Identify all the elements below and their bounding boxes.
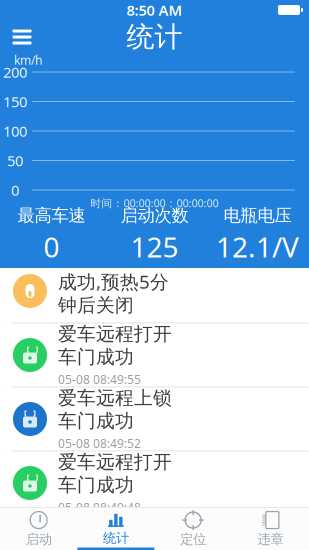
staticText: 爱车远程打开车门成功 [58,323,172,368]
staticText: km/h [14,52,42,68]
staticText: 统计 [103,530,129,546]
staticText: 05-08 08:49:55 [58,371,141,387]
staticText: 违章 [257,531,283,547]
button[interactable]: 爱车远程打开车门成功 [0,451,309,515]
button[interactable]: 统计 [77,507,154,550]
staticText: 最高车速 [17,205,85,226]
staticText: 150 [3,92,27,111]
staticText: 爱车远程上锁车门成功 [58,387,172,432]
button[interactable]: 违章 [232,507,309,550]
staticText: 0 [11,180,19,200]
staticText: 爱车远程启动成功,预热5分钟后关闭 [58,246,172,317]
staticText: 05-08 08:49:59 [58,320,141,336]
button[interactable]: Menu [0,20,44,54]
staticText: 统计 [126,20,182,54]
staticText: 12.1/V [216,228,299,265]
staticText: 定位 [180,531,206,547]
button[interactable]: 启动 [0,507,77,550]
button[interactable]: 爱车远程启动成功,预热5分钟后关闭 [0,259,309,323]
staticText: 时间：00:00:00 [90,196,165,210]
staticText: 125 [130,228,178,265]
staticText: 启动 [26,531,52,547]
staticText: 200 [3,62,27,82]
staticText: 8:50 AM [126,0,182,20]
staticText: 100 [3,121,27,141]
staticText: 0 [43,228,59,265]
staticText: 启动次数 [120,205,188,226]
staticText: 50 [7,151,23,170]
button[interactable]: 定位 [154,507,232,550]
staticText: : [169,196,172,210]
staticText: 05-08 08:49:52 [58,435,141,451]
staticText: 电瓶电压 [223,205,291,226]
button[interactable]: 爱车远程打开车门成功 [0,323,309,387]
staticText: 爱车远程打开车门成功 [58,451,172,496]
staticText: 00:00:00 [176,196,218,210]
button[interactable]: 爱车远程上锁车门成功 [0,387,309,451]
staticText: 05-08 08:49:48 [58,499,141,515]
